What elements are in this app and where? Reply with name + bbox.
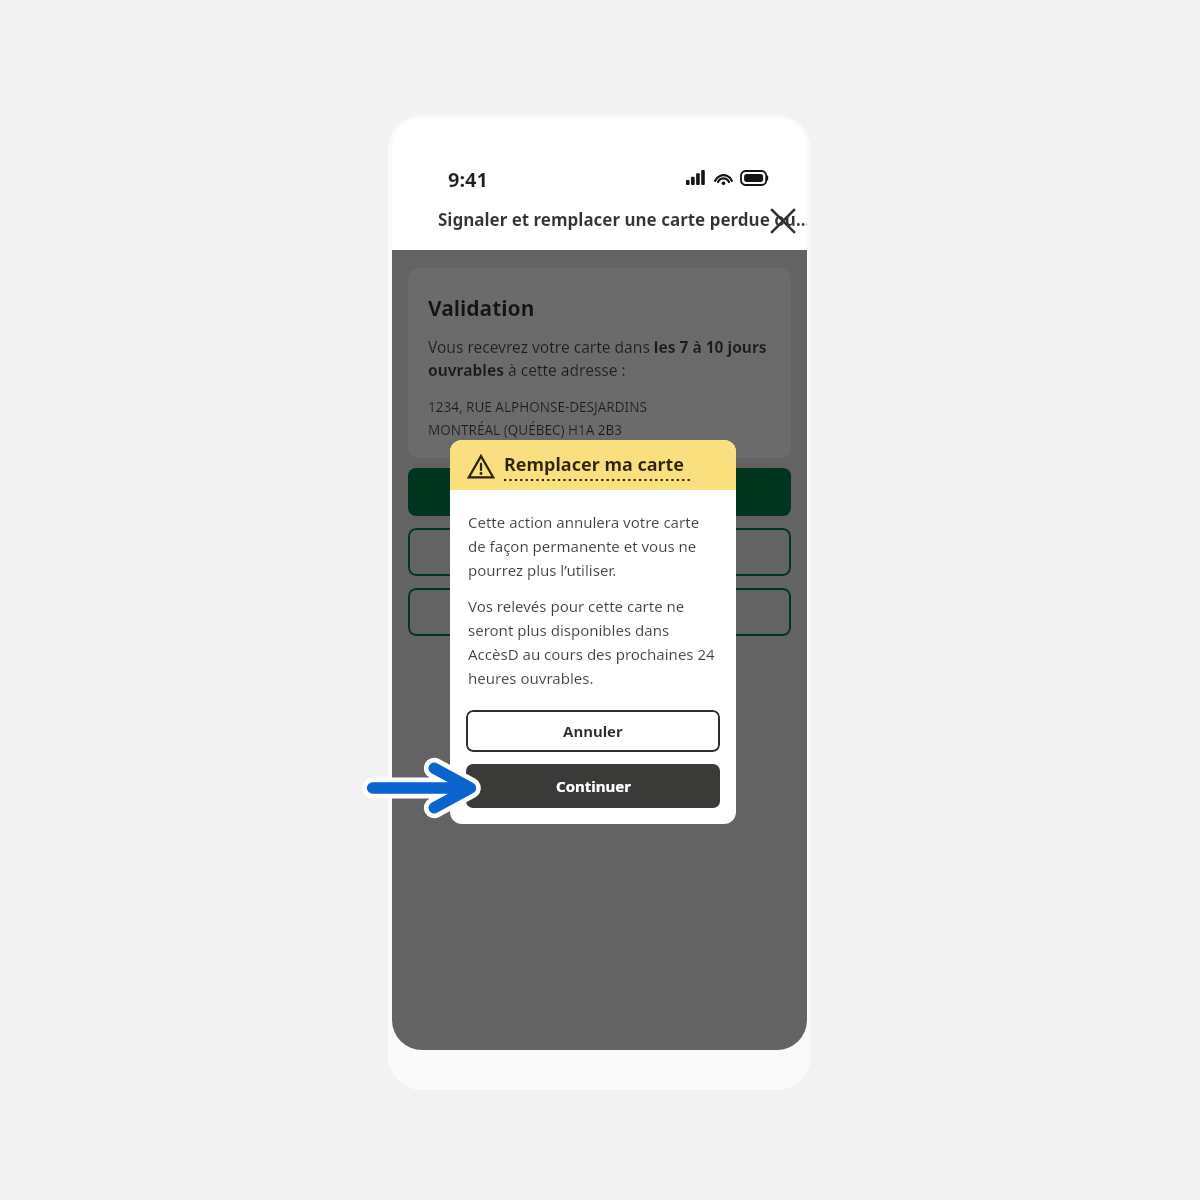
button[interactable]: Fermer xyxy=(762,200,804,242)
staticText: Vous recevrez votre carte dans les 7 à 1… xyxy=(428,336,773,381)
staticText: Remplacer ma carte xyxy=(504,452,685,477)
button[interactable]: Action secondaire 2 xyxy=(408,588,791,636)
button[interactable]: Action principale xyxy=(408,468,791,516)
staticText: Validation xyxy=(428,294,535,323)
staticText: Annuler xyxy=(563,721,623,741)
staticText: 9:41 xyxy=(448,166,488,193)
staticText: 1234, RUE ALPHONSE-DESJARDINS xyxy=(428,398,647,416)
staticText: Vos relevés pour cette carte ne seront p… xyxy=(468,596,718,688)
button[interactable]: Action secondaire 1 xyxy=(408,528,791,576)
staticText: Cette action annulera votre carte de faç… xyxy=(468,512,718,580)
staticText: MONTRÉAL (QUÉBEC) H1A 2B3 xyxy=(428,421,623,439)
button[interactable]: Annuler xyxy=(466,710,720,752)
button[interactable]: Continuer xyxy=(466,764,720,808)
staticText: Signaler et remplacer une carte perdue o… xyxy=(438,208,807,231)
staticText: Continuer xyxy=(556,776,631,796)
